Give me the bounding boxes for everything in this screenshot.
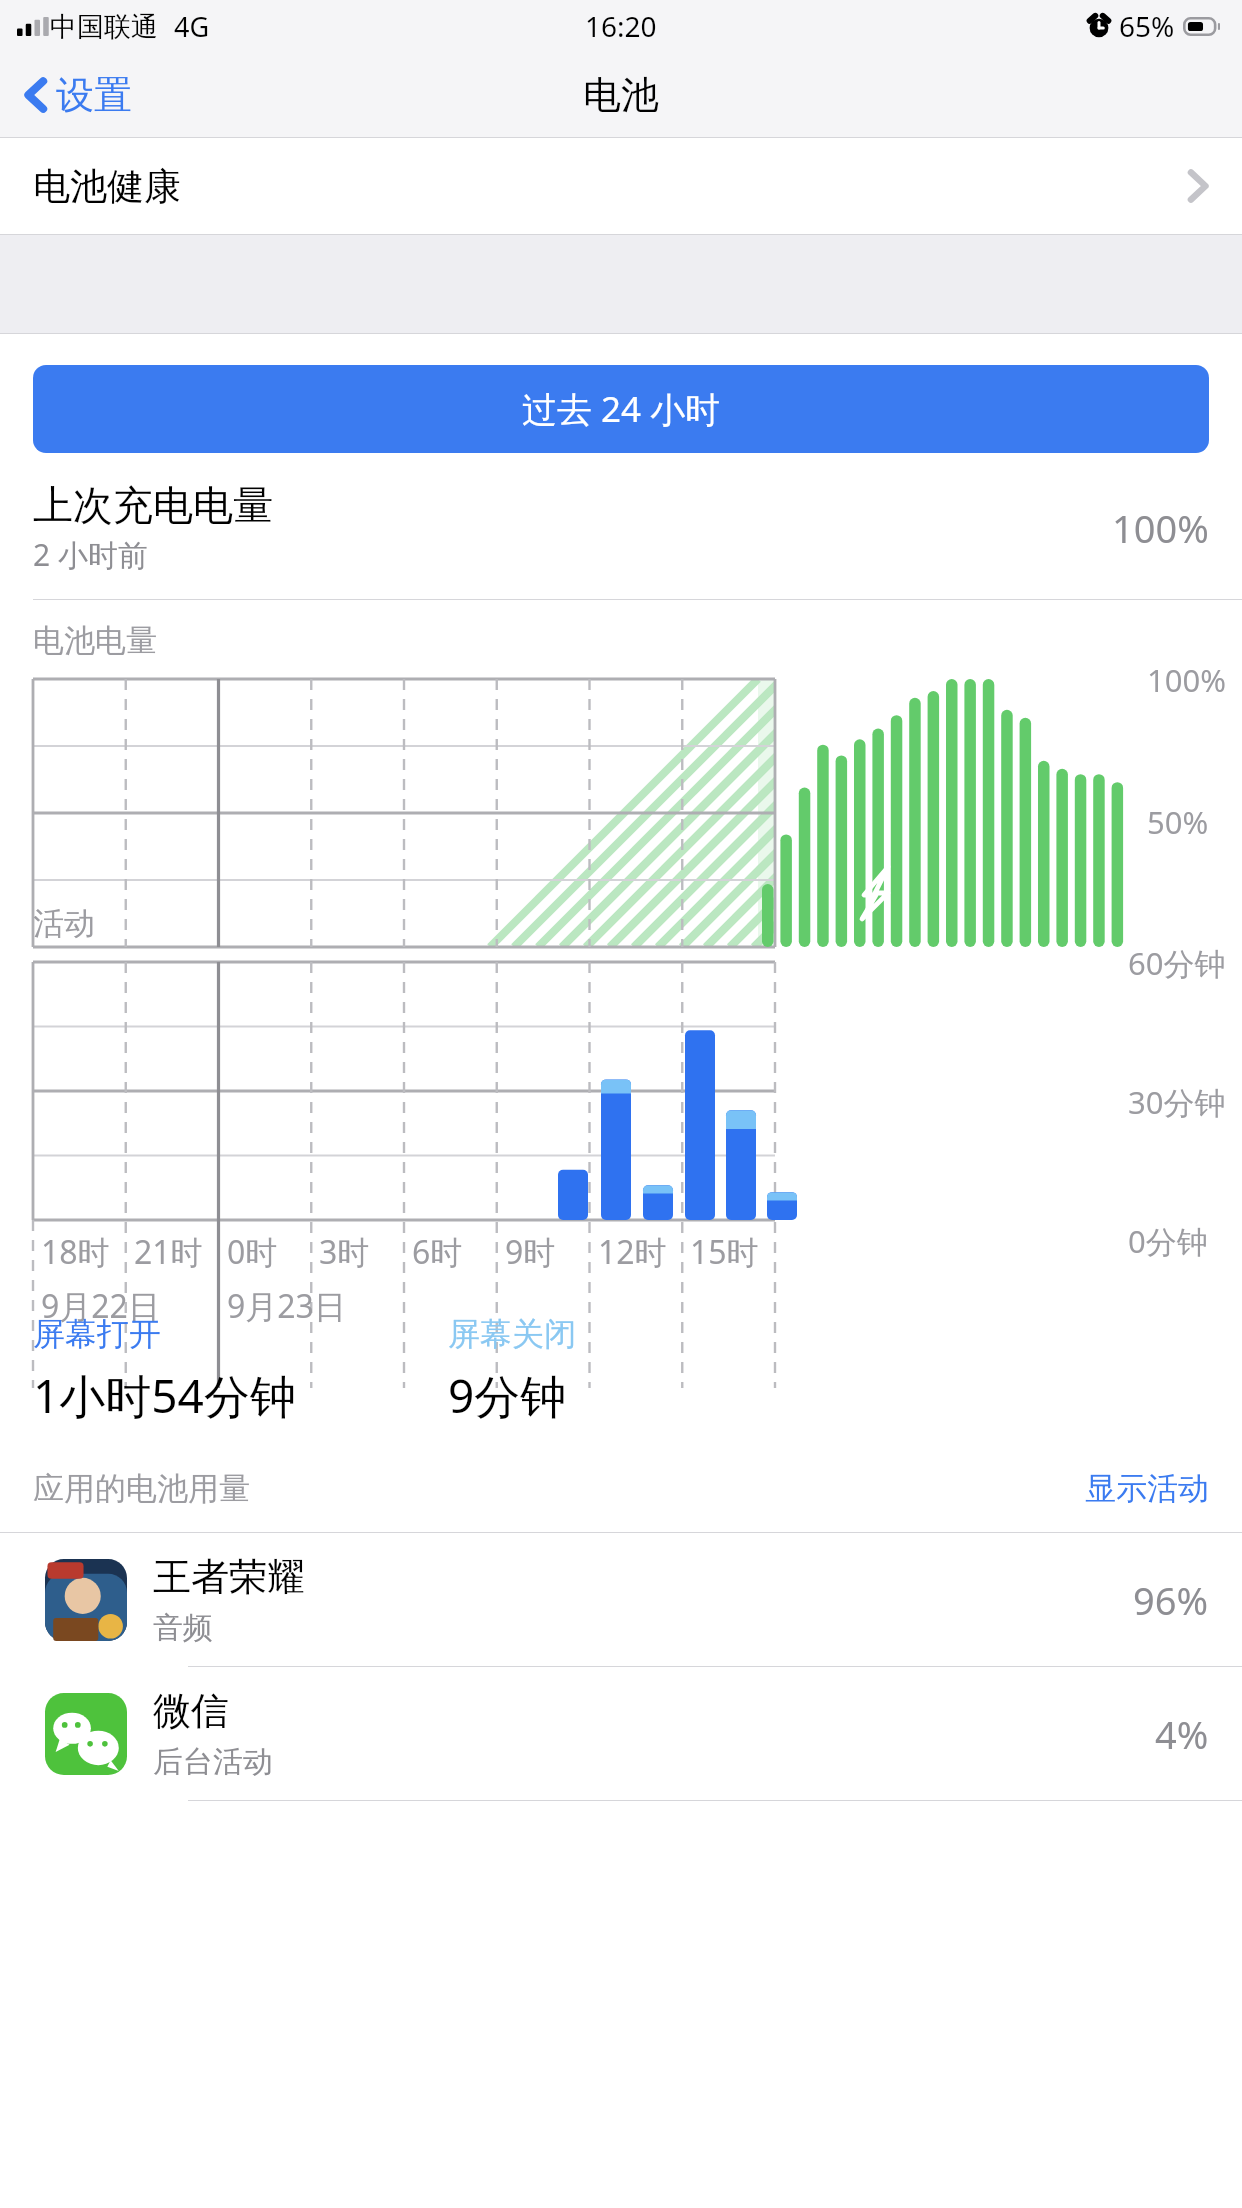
staticText: 30分钟: [1128, 1081, 1226, 1123]
staticText: 0分钟: [1128, 1220, 1208, 1262]
staticText: 王者荣耀: [153, 1553, 305, 1601]
staticText: 应用的电池用量: [33, 1469, 250, 1508]
staticText: 18时: [41, 1230, 110, 1274]
staticText: 21时: [134, 1230, 203, 1274]
staticText: 微信: [153, 1687, 229, 1735]
staticText: 4%: [1155, 1708, 1209, 1760]
staticText: 65%: [1119, 7, 1175, 45]
staticText: 1小时54分钟: [33, 1364, 296, 1427]
staticText: 100%: [1147, 659, 1226, 701]
staticText: 过去 24 小时: [522, 385, 721, 433]
button[interactable]: 电池健康: [0, 138, 1242, 234]
button[interactable]: 显示活动: [1085, 1469, 1209, 1508]
other: Battery Health: [1187, 166, 1209, 206]
button[interactable]: 设置: [0, 61, 152, 129]
staticText: 后台活动: [153, 1743, 273, 1781]
staticText: 9月23日: [227, 1284, 346, 1328]
staticText: 12时: [598, 1230, 667, 1274]
staticText: 显示活动: [1085, 1469, 1209, 1508]
staticText: 音频: [153, 1609, 213, 1647]
staticText: 中国联通: [50, 10, 158, 44]
staticText: 9月22日: [41, 1284, 160, 1328]
staticText: 设置: [56, 71, 132, 119]
staticText: 6时: [412, 1230, 463, 1274]
staticText: 100%: [1112, 502, 1209, 554]
button[interactable]: 微信: [0, 1667, 1242, 1800]
staticText: 活动: [33, 904, 95, 943]
button[interactable]: 王者荣耀: [0, 1533, 1242, 1666]
staticText: 9分钟: [448, 1364, 567, 1427]
staticText: 9时: [505, 1230, 556, 1274]
staticText: 电池电量: [33, 621, 157, 660]
staticText: 屏幕关闭: [448, 1314, 576, 1354]
staticText: 3时: [319, 1230, 370, 1274]
staticText: 上次充电电量: [33, 480, 273, 530]
staticText: 电池: [583, 71, 659, 119]
staticText: 2 小时前: [33, 534, 148, 575]
staticText: 16:20: [585, 7, 657, 45]
staticText: 50%: [1147, 801, 1209, 843]
staticText: 60分钟: [1128, 942, 1226, 984]
staticText: 4G: [174, 8, 210, 45]
staticText: 0时: [227, 1230, 278, 1274]
staticText: 电池健康: [33, 163, 181, 210]
staticText: 96%: [1133, 1574, 1209, 1626]
staticText: 15时: [690, 1230, 759, 1274]
staticText: 屏幕打开: [33, 1314, 161, 1354]
button[interactable]: 过去 24 小时: [33, 365, 1209, 453]
